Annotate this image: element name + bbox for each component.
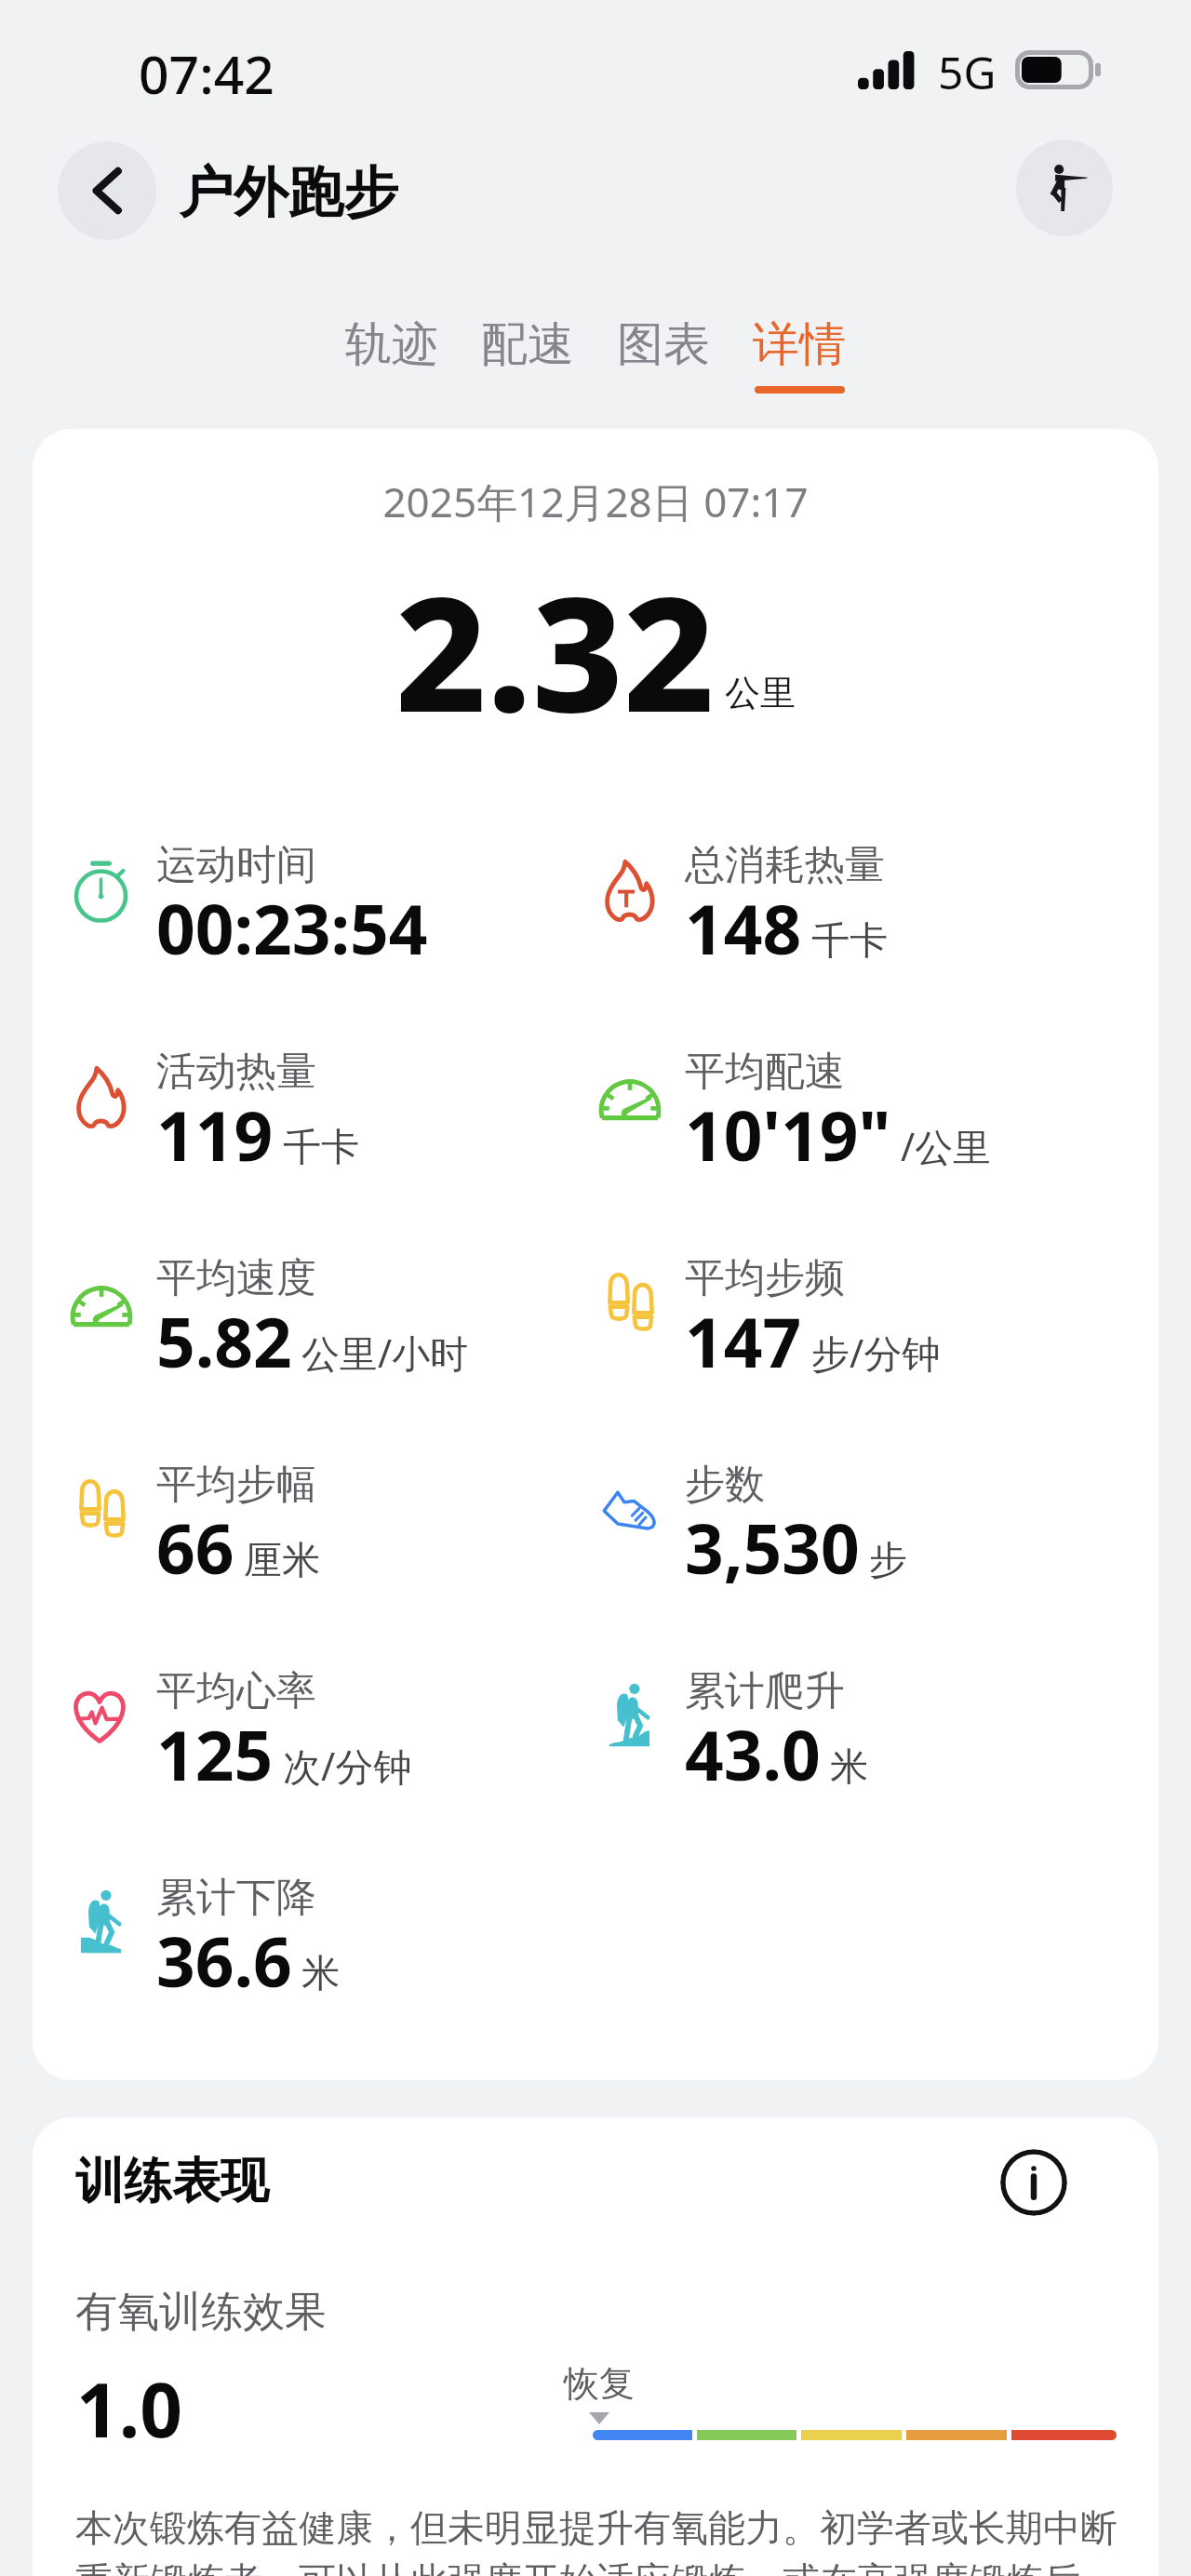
staticText: 3,530	[685, 1502, 860, 1594]
staticText: 平均心率	[156, 1666, 316, 1716]
staticText: 累计爬升	[685, 1666, 845, 1716]
button[interactable]: 详情	[731, 315, 867, 418]
staticText: 147	[685, 1295, 802, 1387]
staticText: 平均配速	[685, 1047, 845, 1097]
staticText: 步数	[685, 1460, 765, 1510]
staticText: 07:42	[139, 37, 274, 110]
staticText: 配速	[481, 315, 574, 374]
button[interactable]: Info	[1000, 2149, 1067, 2216]
staticText: /公里	[901, 1120, 992, 1172]
staticText: 公里/小时	[301, 1327, 469, 1379]
staticText: 公里	[725, 671, 796, 715]
staticText: 累计下降	[156, 1873, 316, 1923]
staticText: 119	[156, 1088, 274, 1181]
button[interactable]: Back	[58, 141, 156, 240]
staticText: 图表	[617, 315, 710, 374]
staticText: 恢复	[564, 2361, 635, 2406]
staticText: 66	[156, 1502, 234, 1594]
staticText: 平均步幅	[156, 1460, 316, 1510]
staticText: 2.32	[395, 542, 716, 758]
staticText: 平均速度	[156, 1253, 316, 1303]
staticText: 36.6	[156, 1915, 292, 2007]
staticText: 活动热量	[156, 1047, 316, 1097]
staticText: 43.0	[685, 1708, 821, 1800]
staticText: 10'19"	[685, 1088, 891, 1181]
staticText: 5G	[938, 42, 997, 102]
staticText: 厘米	[244, 1537, 320, 1585]
staticText: 步/分钟	[811, 1327, 941, 1379]
staticText: 户外跑步	[179, 158, 398, 227]
button[interactable]: 图表	[595, 315, 731, 418]
staticText: 轨迹	[345, 315, 438, 374]
staticText: 千卡	[811, 917, 888, 966]
staticText: 运动时间	[156, 840, 316, 890]
button[interactable]: 配速	[460, 315, 595, 418]
staticText: 米	[830, 1743, 868, 1792]
staticText: 千卡	[283, 1124, 359, 1172]
staticText: 有氧训练效果	[75, 2286, 327, 2339]
staticText: 125	[156, 1708, 274, 1800]
staticText: 148	[685, 882, 802, 974]
staticText: 次/分钟	[283, 1740, 412, 1792]
staticText: 00:23:54	[156, 882, 428, 974]
staticText: 5.82	[156, 1295, 292, 1387]
staticText: 总消耗热量	[685, 840, 885, 890]
staticText: 平均步频	[685, 1253, 845, 1303]
staticText: 1.0	[76, 2357, 182, 2459]
staticText: 步	[869, 1537, 907, 1585]
staticText: 详情	[753, 315, 846, 374]
staticText: 训练表现	[75, 2151, 269, 2212]
button[interactable]: Activity type	[1016, 140, 1113, 236]
staticText: 本次锻炼有益健康，但未明显提升有氧能力。初学者或长期中断重新锻炼者，可以从此强度…	[75, 2504, 1119, 2576]
staticText: 2025年12月28日 07:17	[33, 474, 1158, 529]
staticText: 米	[301, 1950, 340, 1998]
button[interactable]: 轨迹	[324, 315, 460, 418]
